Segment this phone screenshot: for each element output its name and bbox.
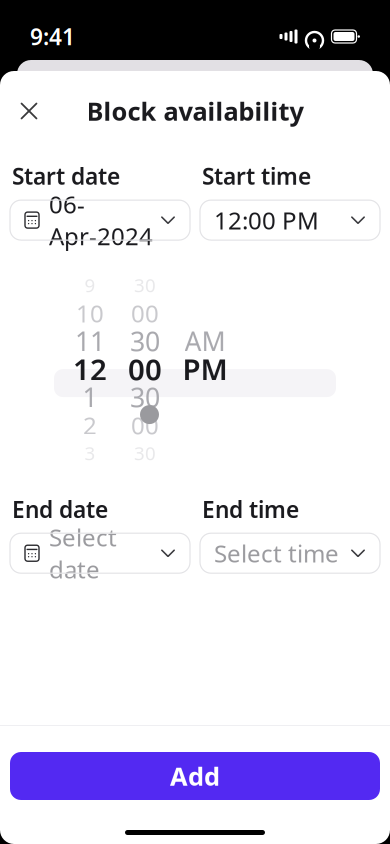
staticText: Select date	[49, 521, 117, 585]
staticText: 00	[131, 409, 159, 441]
staticText: PM	[182, 350, 227, 389]
button[interactable]: Close	[7, 89, 51, 133]
button[interactable]: Add	[10, 752, 380, 800]
staticText: 2	[83, 409, 97, 441]
staticText: Start time	[202, 161, 311, 191]
staticText: 30	[130, 323, 160, 359]
staticText: 30	[134, 273, 156, 297]
staticText: 9	[84, 273, 95, 297]
button[interactable]: 12:00 PM	[200, 200, 380, 240]
button[interactable]: Select time	[200, 533, 380, 573]
staticText: 00	[131, 297, 159, 329]
staticText: Select time	[214, 537, 339, 569]
staticText: 12	[73, 350, 107, 389]
staticText: 30	[134, 441, 156, 465]
staticText: Block availability	[86, 94, 303, 128]
staticText: Add	[170, 759, 220, 793]
staticText: Start date	[12, 161, 120, 191]
staticText: End time	[202, 494, 299, 524]
button[interactable]: Select date	[10, 533, 190, 573]
staticText: 00	[128, 350, 162, 389]
staticText: 30	[130, 379, 160, 415]
staticText: 12:00 PM	[214, 204, 319, 236]
staticText: 3	[84, 441, 95, 465]
staticText: 06-Apr-2024	[49, 188, 153, 252]
staticText: 11	[75, 323, 105, 359]
button[interactable]: 06-Apr-2024	[10, 200, 190, 240]
staticText: End date	[12, 494, 108, 524]
staticText: 9:41	[30, 21, 75, 51]
staticText: 10	[76, 297, 104, 329]
staticText: 1	[82, 379, 97, 415]
staticText: AM	[184, 323, 225, 359]
